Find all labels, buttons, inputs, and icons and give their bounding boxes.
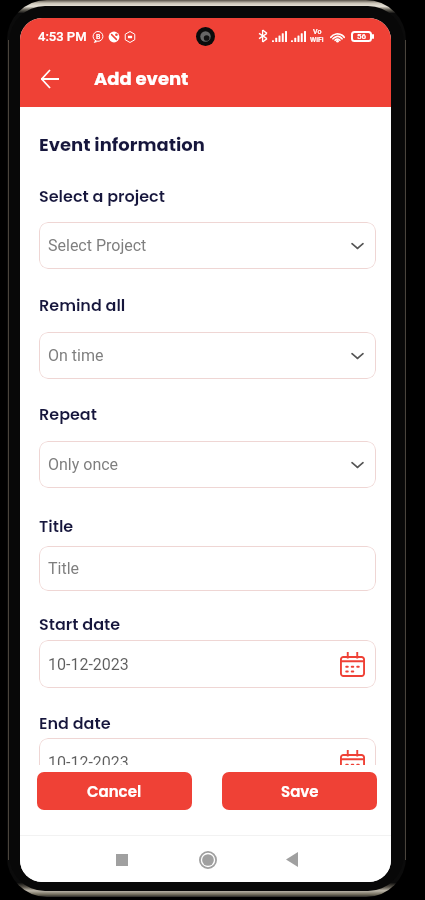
button[interactable]: Cancel (37, 772, 192, 810)
staticText: Repeat (39, 403, 97, 425)
button[interactable]: Home (185, 837, 230, 882)
staticText: 10-12-2023 (48, 655, 129, 674)
button[interactable]: Pick date (339, 651, 365, 677)
staticText: Select Project (48, 236, 147, 255)
staticText: Save (281, 781, 319, 802)
button[interactable]: Back (269, 837, 314, 882)
button[interactable]: 10-12-2023 (39, 738, 376, 786)
staticText: 10-12-2023 (48, 753, 129, 772)
staticText: WiFi (310, 36, 324, 44)
staticText: Cancel (87, 781, 142, 802)
staticText: Start date (39, 613, 121, 635)
button[interactable]: On time (39, 332, 376, 379)
staticText: Vo (313, 28, 322, 36)
staticText: 56 (357, 32, 367, 41)
staticText: End date (39, 712, 111, 734)
staticText: 4:53 PM (38, 29, 87, 44)
staticText: Title (39, 515, 74, 537)
staticText: Select a project (39, 185, 165, 207)
button[interactable]: Recent apps (99, 837, 144, 882)
button[interactable]: Pick date (339, 749, 365, 775)
staticText: Event information (39, 132, 205, 157)
button[interactable]: Save (222, 772, 377, 810)
button[interactable]: Title (39, 546, 376, 591)
staticText: On time (48, 346, 104, 365)
button[interactable]: Only once (39, 441, 376, 488)
staticText: B (96, 33, 101, 41)
button[interactable]: Back (31, 60, 68, 97)
staticText: Title (48, 559, 80, 578)
staticText: Remind all (39, 294, 126, 316)
button[interactable]: Select Project (39, 222, 376, 269)
staticText: Only once (48, 455, 119, 474)
staticText: Add event (94, 66, 189, 91)
button[interactable]: 10-12-2023 (39, 640, 376, 688)
